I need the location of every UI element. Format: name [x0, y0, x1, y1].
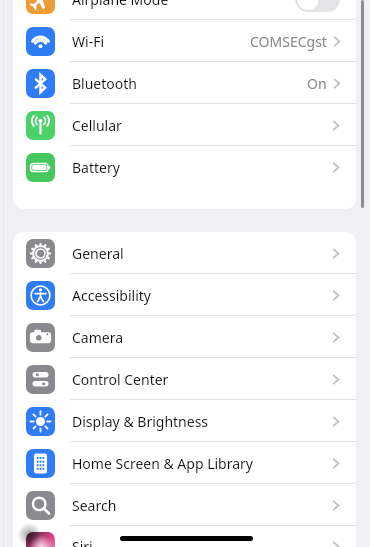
- button[interactable]: Display & Brightness: [13, 400, 356, 442]
- button[interactable]: Cellular: [13, 104, 356, 146]
- staticText: Battery: [72, 158, 120, 177]
- staticText: Bluetooth: [72, 74, 137, 93]
- button[interactable]: Control Center: [13, 358, 356, 400]
- staticText: COMSECgst: [250, 32, 327, 51]
- staticText: Home Screen & App Library: [72, 454, 253, 473]
- button[interactable]: Siri: [13, 526, 356, 547]
- staticText: Display & Brightness: [72, 412, 209, 431]
- button[interactable]: General: [13, 232, 356, 274]
- button[interactable]: Wi-Fi: [13, 20, 356, 62]
- button[interactable]: Search: [13, 484, 356, 526]
- button[interactable]: Airplane Mode: [13, 0, 356, 20]
- button[interactable]: Accessibility: [13, 274, 356, 316]
- staticText: Wi-Fi: [72, 32, 105, 51]
- button[interactable]: Camera: [13, 316, 356, 358]
- staticText: General: [72, 244, 124, 263]
- staticText: Cellular: [72, 116, 122, 135]
- button[interactable]: Battery: [13, 146, 356, 188]
- staticText: Camera: [72, 328, 124, 347]
- staticText: On: [307, 74, 327, 93]
- staticText: Airplane Mode: [72, 0, 169, 9]
- staticText: Accessibility: [72, 286, 151, 305]
- staticText: Control Center: [72, 370, 169, 389]
- staticText: Search: [72, 496, 117, 515]
- button[interactable]: Bluetooth: [13, 62, 356, 104]
- staticText: Siri: [72, 537, 93, 547]
- button[interactable]: Home Screen & App Library: [13, 442, 356, 484]
